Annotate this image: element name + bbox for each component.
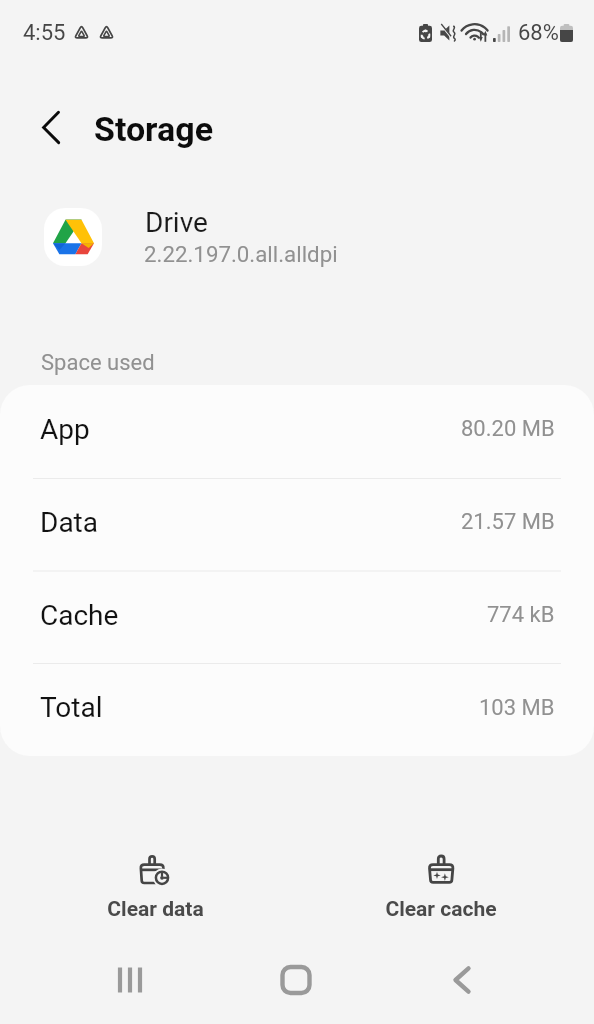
staticText: Clear data [107,897,204,922]
button[interactable]: App [0,385,594,478]
staticText: Clear cache [385,897,497,922]
staticText: Total [40,691,103,724]
staticText: 80.20 MB [461,416,555,442]
staticText: Drive [145,206,208,239]
staticText: Space used [41,350,155,376]
button[interactable]: Total [0,664,594,756]
button[interactable]: Recents [90,946,170,1014]
button[interactable]: Data [0,478,594,571]
staticText: Storage [94,109,214,149]
staticText: Data [40,506,98,539]
staticText: 774 kB [487,602,555,628]
staticText: 21.57 MB [461,509,555,535]
button[interactable]: Cache [0,571,594,664]
button[interactable]: Clear cache [354,843,528,932]
staticText: 103 MB [479,695,555,721]
staticText: 68% [518,20,559,46]
staticText: App [40,413,90,446]
button[interactable]: Home [256,946,336,1014]
staticText: Cache [40,599,119,632]
staticText: 4:55 [23,20,66,46]
button[interactable]: Drive [0,196,594,278]
button[interactable]: Back [422,946,502,1014]
button[interactable]: Navigate up [23,100,79,156]
button[interactable]: Clear data [68,843,242,932]
staticText: 2.22.197.0.all.alldpi [144,241,338,267]
